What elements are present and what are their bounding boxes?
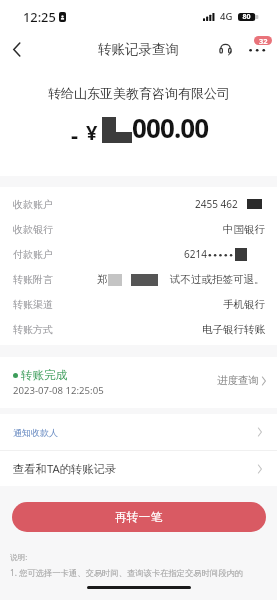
staticText: 再转一笔 <box>115 510 163 525</box>
staticText: 转账完成 <box>21 368 67 382</box>
staticText: 进度查询 <box>217 374 259 387</box>
button[interactable]: 查看和TA的转账记录 <box>0 451 277 486</box>
staticText: 4G <box>220 10 233 23</box>
staticText: 付款账户 <box>13 248 53 261</box>
staticText: 郑 <box>97 273 108 286</box>
staticText: 手机银行 <box>223 298 265 311</box>
staticText: 000.00 <box>132 110 209 145</box>
staticText: 查看和TA的转账记录 <box>13 461 117 476</box>
staticText: 12:25 <box>23 8 56 25</box>
staticText: 32 <box>259 36 268 45</box>
staticText: 1. 您可选择一卡通、交易时间、查询该卡在指定交易时间段内的 <box>10 567 244 578</box>
staticText: 中国银行 <box>223 223 265 236</box>
staticText: 2023-07-08 12:25:05 <box>13 384 104 397</box>
staticText: 转账记录查询 <box>98 41 179 58</box>
button[interactable]: 进度查询 <box>217 374 266 387</box>
staticText: 电子银行转账 <box>202 323 265 336</box>
button[interactable]: 通知收款人 <box>0 414 277 450</box>
staticText: 转账渠道 <box>13 298 53 311</box>
button[interactable]: 再转一笔 <box>12 502 266 532</box>
staticText: 转账方式 <box>13 323 53 336</box>
staticText: 2455 462 <box>195 197 238 211</box>
staticText: 收款账户 <box>13 198 53 211</box>
staticText: 转账附言 <box>13 273 53 286</box>
staticText: 6214 <box>184 247 207 261</box>
button[interactable]: More options <box>245 35 273 63</box>
staticText: 转给山东亚美教育咨询有限公司 <box>48 85 230 101</box>
staticText: ¥ <box>86 119 98 146</box>
staticText: - <box>71 119 79 149</box>
staticText: 通知收款人 <box>13 427 58 438</box>
staticText: 80 <box>238 12 255 22</box>
button[interactable]: Customer service <box>212 36 238 62</box>
staticText: 说明: <box>10 552 28 562</box>
staticText: 收款银行 <box>13 223 53 236</box>
button[interactable]: Back <box>0 32 34 66</box>
staticText: 试不过或拒签可退。 <box>170 273 265 286</box>
